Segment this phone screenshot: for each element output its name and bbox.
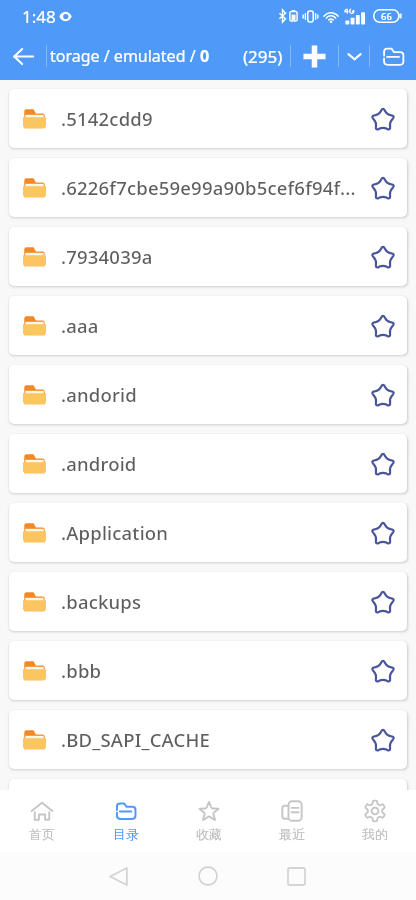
- button[interactable]: .backups: [9, 572, 407, 631]
- staticText: .backups: [61, 589, 359, 614]
- staticText: .andorid: [61, 382, 359, 407]
- button[interactable]: .bbb: [9, 641, 407, 700]
- button[interactable]: .7934039a: [9, 227, 407, 286]
- button[interactable]: Favorite: [359, 434, 407, 493]
- staticText: .6226f7cbe59e99a90b5cef6f94f...: [61, 175, 359, 200]
- button[interactable]: Add: [291, 32, 338, 80]
- staticText: .aaa: [61, 313, 359, 338]
- button[interactable]: .5142cdd9: [9, 89, 407, 148]
- button[interactable]: .aaa: [9, 296, 407, 355]
- button[interactable]: Favorite: [359, 710, 407, 769]
- button[interactable]: 收藏: [167, 790, 250, 852]
- button[interactable]: .BD_SAPI_CACHE: [9, 710, 407, 769]
- button[interactable]: Favorite: [359, 296, 407, 355]
- button[interactable]: .Application: [9, 503, 407, 562]
- staticText: 0: [200, 45, 210, 67]
- staticText: 我的: [362, 826, 388, 842]
- button[interactable]: .android: [9, 434, 407, 493]
- button[interactable]: Favorite: [359, 641, 407, 700]
- button[interactable]: Favorite: [359, 89, 407, 148]
- button[interactable]: .6226f7cbe59e99a90b5cef6f94f...: [9, 158, 407, 217]
- button[interactable]: Back: [96, 854, 140, 898]
- staticText: .android: [61, 451, 359, 476]
- button[interactable]: Favorite: [359, 572, 407, 631]
- button[interactable]: Back: [0, 32, 46, 80]
- staticText: torage / emulated /: [50, 45, 200, 67]
- staticText: (295): [243, 45, 283, 68]
- button[interactable]: Home: [186, 854, 230, 898]
- button[interactable]: Expand: [339, 32, 369, 80]
- button[interactable]: Favorite: [359, 503, 407, 562]
- staticText: .bbb: [61, 658, 359, 683]
- button[interactable]: 首页: [0, 790, 84, 852]
- button[interactable]: .andorid: [9, 365, 407, 424]
- staticText: 66: [381, 10, 392, 23]
- staticText: .7934039a: [61, 244, 359, 269]
- staticText: 1:48: [22, 5, 56, 28]
- staticText: 收藏: [196, 826, 222, 842]
- staticText: 首页: [29, 826, 55, 842]
- button[interactable]: Favorite: [359, 365, 407, 424]
- button[interactable]: 目录: [84, 790, 167, 852]
- button[interactable]: New folder: [370, 32, 416, 80]
- button[interactable]: Recents: [274, 854, 318, 898]
- button[interactable]: 我的: [333, 790, 416, 852]
- staticText: 目录: [113, 826, 139, 842]
- button[interactable]: 最近: [250, 790, 333, 852]
- staticText: .BD_SAPI_CACHE: [61, 727, 359, 752]
- staticText: .Application: [61, 520, 359, 545]
- button[interactable]: Favorite: [359, 158, 407, 217]
- staticText: .5142cdd9: [61, 106, 359, 131]
- button[interactable]: Favorite: [359, 227, 407, 286]
- staticText: 最近: [279, 826, 305, 842]
